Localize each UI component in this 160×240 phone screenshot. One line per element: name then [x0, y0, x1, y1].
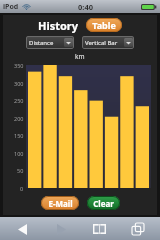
- button[interactable]: History: [38, 18, 79, 33]
- staticText: History: [38, 18, 79, 33]
- staticText: 50: [17, 167, 24, 174]
- staticText: km: [75, 52, 85, 61]
- staticText: 300: [14, 80, 24, 87]
- button[interactable]: Vertical Bar: [82, 36, 134, 49]
- staticText: 150: [14, 132, 24, 139]
- button[interactable]: Bookmarks: [85, 219, 113, 239]
- staticText: 350: [14, 62, 24, 69]
- staticText: 100: [14, 150, 24, 157]
- staticText: E-Mail: [48, 198, 73, 209]
- button[interactable]: Clear: [87, 196, 120, 210]
- staticText: Clear: [93, 198, 114, 209]
- staticText: 250: [14, 97, 24, 104]
- staticText: iPod: [3, 2, 19, 12]
- staticText: Distance: [29, 39, 54, 47]
- button[interactable]: E-Mail: [41, 196, 79, 210]
- button[interactable]: Back: [8, 219, 36, 239]
- staticText: Table: [92, 19, 116, 31]
- button[interactable]: Table: [86, 18, 122, 32]
- staticText: Vertical Bar: [85, 39, 118, 47]
- staticText: 200: [14, 115, 24, 122]
- button[interactable]: Distance: [26, 36, 74, 49]
- staticText: 0:40: [78, 2, 93, 12]
- button[interactable]: Pages: [124, 219, 152, 239]
- button[interactable]: Forward: [47, 219, 75, 239]
- staticText: 0: [20, 185, 24, 192]
